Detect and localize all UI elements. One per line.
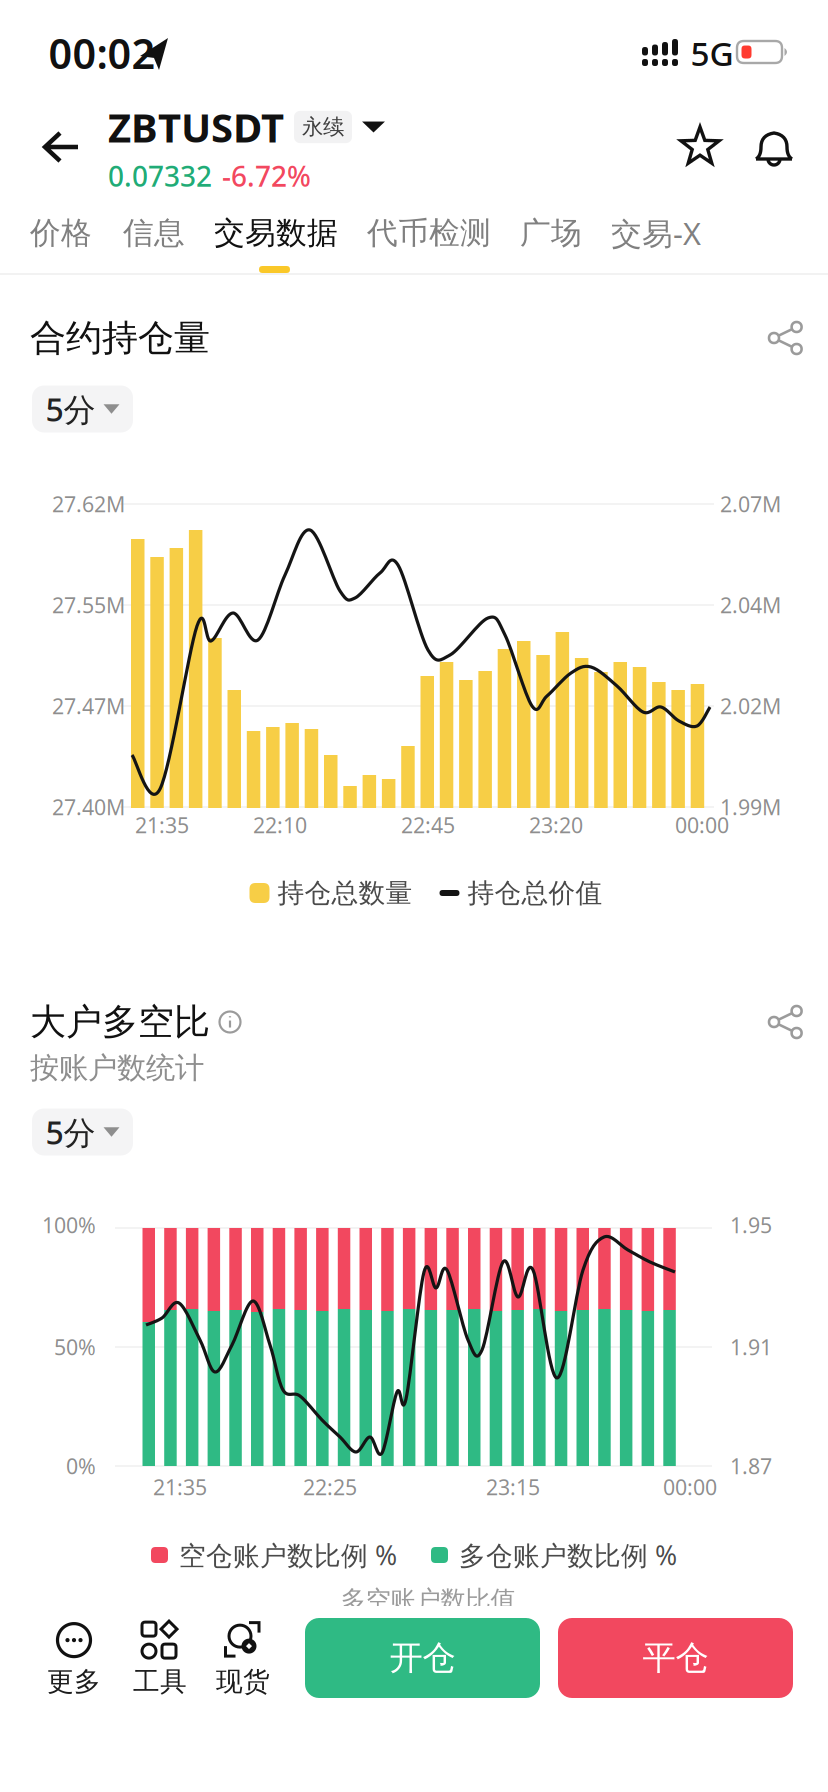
staticText: 代币检测 (367, 214, 491, 252)
staticText: 开仓 (389, 1637, 455, 1678)
button[interactable]: 广场 (520, 214, 582, 252)
button[interactable]: 交易-X (611, 213, 701, 253)
button[interactable]: More (47, 1620, 101, 1698)
button[interactable]: 交易数据 (214, 214, 338, 252)
staticText: 交易-X (611, 213, 701, 253)
staticText: 22:10 (253, 811, 307, 839)
staticText: 100% (42, 1211, 96, 1239)
staticText: 27.55M (52, 591, 125, 619)
staticText: 合约持仓量 (30, 316, 210, 360)
staticText: 持仓总价值 (467, 877, 602, 909)
staticText: 21:35 (153, 1473, 207, 1501)
button[interactable]: Share (764, 316, 808, 360)
staticText: 22:45 (401, 811, 455, 839)
button[interactable]: Alerts (752, 124, 796, 168)
staticText: 持仓总数量 (277, 877, 412, 909)
button[interactable]: Info (218, 1010, 242, 1034)
staticText: 27.40M (52, 793, 125, 821)
button[interactable]: Tools (133, 1620, 187, 1698)
staticText: 空仓账户数比例 % (179, 1537, 397, 1573)
staticText: 0.07332 (108, 157, 212, 195)
button[interactable]: 平仓 (558, 1618, 793, 1698)
button[interactable]: 开仓 (305, 1618, 540, 1698)
staticText: 1.87 (730, 1452, 772, 1480)
staticText: 2.07M (720, 490, 781, 518)
staticText: 00:00 (675, 811, 729, 839)
staticText: 21:35 (135, 811, 189, 839)
staticText: 23:15 (486, 1473, 540, 1501)
staticText: 永续 (302, 114, 344, 140)
button[interactable]: 5分 (32, 385, 133, 432)
staticText: 5G (690, 31, 733, 75)
staticText: 50% (54, 1333, 96, 1361)
staticText: 1.95 (730, 1211, 772, 1239)
staticText: 按账户数统计 (30, 1050, 204, 1086)
staticText: ZBTUSDT (108, 100, 284, 153)
button[interactable]: 价格 (30, 214, 92, 252)
staticText: 交易数据 (214, 214, 338, 252)
staticText: 广场 (520, 214, 582, 252)
button[interactable]: Spot (216, 1620, 270, 1698)
staticText: 1.91 (730, 1333, 772, 1361)
button[interactable]: 代币检测 (367, 214, 491, 252)
staticText: 00:00 (663, 1473, 717, 1501)
staticText: 5分 (45, 388, 95, 430)
staticText: 0% (66, 1452, 96, 1480)
button[interactable]: Favorite (678, 124, 722, 168)
staticText: 22:25 (303, 1473, 357, 1501)
staticText: -6.72% (222, 157, 311, 195)
staticText: 27.47M (52, 692, 125, 720)
staticText: 2.04M (720, 591, 781, 619)
staticText: 27.62M (52, 490, 125, 518)
staticText: 大户多空比 (30, 1000, 210, 1044)
staticText: 现货 (216, 1665, 270, 1698)
button[interactable]: 5分 (32, 1108, 133, 1155)
button[interactable]: Share (764, 1000, 808, 1044)
staticText: 23:20 (529, 811, 583, 839)
staticText: 多仓账户数比例 % (459, 1537, 677, 1573)
staticText: 2.02M (720, 692, 781, 720)
staticText: 更多 (47, 1665, 101, 1698)
staticText: 00:02 (48, 26, 155, 80)
button[interactable]: 信息 (123, 214, 185, 252)
button[interactable]: Back (38, 125, 82, 169)
staticText: 信息 (123, 214, 185, 252)
staticText: 1.99M (720, 793, 781, 821)
staticText: 价格 (30, 214, 92, 252)
staticText: 5分 (45, 1111, 95, 1153)
staticText: 多空账户数比值 (340, 1584, 515, 1615)
staticText: 平仓 (642, 1637, 708, 1678)
button[interactable]: ZBTUSDT (108, 100, 528, 153)
staticText: 工具 (133, 1665, 187, 1698)
